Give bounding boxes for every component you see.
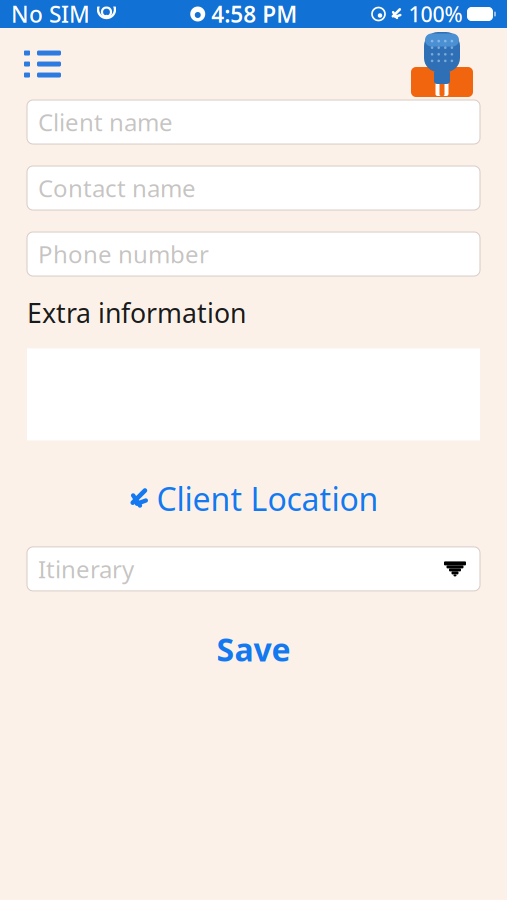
button[interactable]: Menu [18,42,67,85]
button[interactable]: Client name [27,100,480,144]
button[interactable]: Contact name [27,166,480,210]
button[interactable]: Client Location [118,473,388,524]
button[interactable]: Phone number [27,232,480,276]
staticText: 100% [408,0,462,28]
staticText: No SIM [11,0,90,29]
staticText: Client name [38,106,173,138]
staticText: Client Location [156,477,378,520]
staticText: Extra information [27,295,246,330]
staticText: Save [216,628,290,670]
staticText: 4:58 PM [211,0,297,29]
staticText: Itinerary [38,553,134,585]
staticText: Phone number [38,238,209,270]
button[interactable]: Profile [407,29,477,99]
staticText: Contact name [38,172,196,204]
button[interactable]: Save [194,623,312,675]
button[interactable]: Itinerary [27,547,480,591]
